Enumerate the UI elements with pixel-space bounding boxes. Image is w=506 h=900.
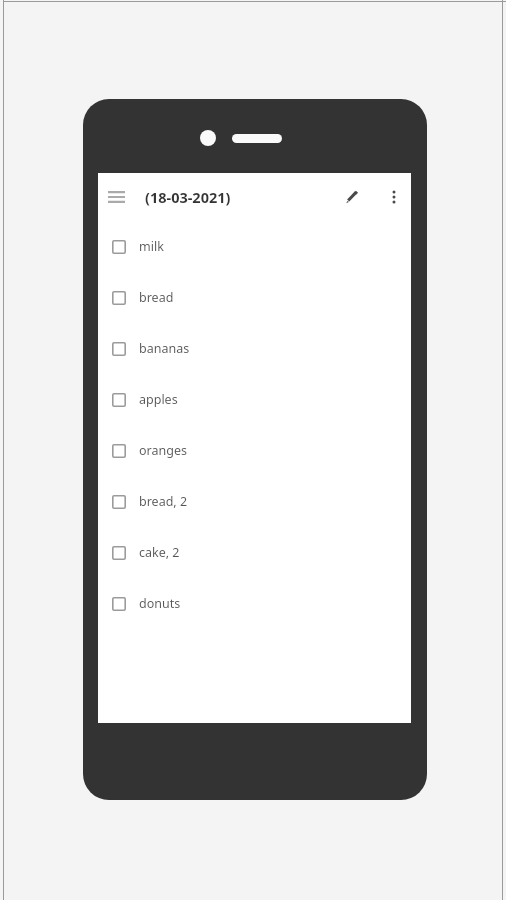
button[interactable]: Toggle donuts [104, 589, 134, 619]
staticText: donuts [139, 595, 181, 612]
button[interactable]: Toggle oranges [98, 425, 411, 476]
button[interactable]: Toggle milk [98, 221, 411, 272]
staticText: bread, 2 [139, 493, 188, 510]
staticText: bananas [139, 340, 190, 357]
button[interactable]: Toggle cake, 2 [98, 527, 411, 578]
button[interactable]: Toggle bananas [98, 323, 411, 374]
button[interactable]: Toggle apples [98, 374, 411, 425]
staticText: bread [139, 289, 174, 306]
button[interactable]: More options [379, 177, 409, 217]
button[interactable]: Toggle bananas [104, 334, 134, 364]
button[interactable]: Menu [99, 177, 133, 217]
button[interactable]: Edit [331, 177, 371, 217]
staticText: cake, 2 [139, 544, 180, 561]
button[interactable]: Toggle bread [104, 283, 134, 313]
staticText: milk [139, 238, 164, 255]
button[interactable]: Toggle bread [98, 272, 411, 323]
button[interactable]: Toggle bread, 2 [104, 487, 134, 517]
button[interactable]: Toggle cake, 2 [104, 538, 134, 568]
staticText: oranges [139, 442, 187, 459]
staticText: apples [139, 391, 178, 408]
button[interactable]: Toggle apples [104, 385, 134, 415]
button[interactable]: Toggle milk [104, 232, 134, 262]
button[interactable]: Toggle oranges [104, 436, 134, 466]
button[interactable]: Toggle donuts [98, 578, 411, 629]
button[interactable]: Toggle bread, 2 [98, 476, 411, 527]
staticText: (18-03-2021) [145, 187, 231, 207]
